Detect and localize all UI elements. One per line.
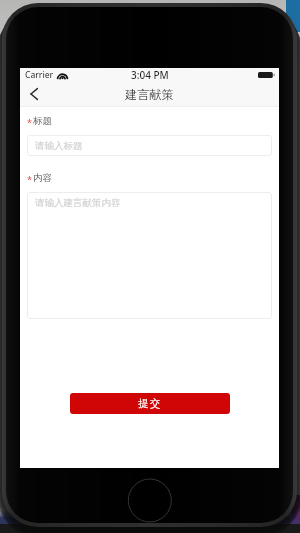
staticText: 3:04 PM [131,68,169,81]
staticText: Carrier [25,69,54,81]
button[interactable]: 请输入建言献策内容 [27,192,272,319]
staticText: * [27,173,32,185]
staticText: 请输入标题 [35,140,83,152]
staticText: 请输入建言献策内容 [35,197,121,209]
staticText: 提交 [138,397,162,410]
button[interactable]: 提交 [70,393,230,414]
staticText: 标题 [33,115,52,127]
staticText: * [27,116,32,128]
button[interactable]: 返回 [23,82,45,106]
staticText: 建言献策 [125,87,174,102]
button[interactable]: 请输入标题 [27,135,272,156]
staticText: 内容 [33,172,52,184]
